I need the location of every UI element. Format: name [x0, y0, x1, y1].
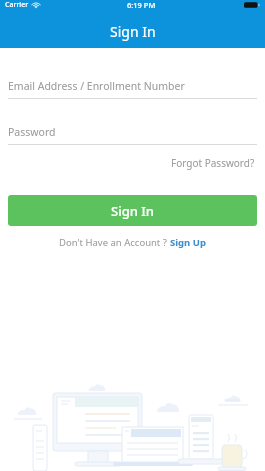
button[interactable]: Sign In: [8, 195, 257, 226]
staticText: Don't Have an Account ?: [59, 236, 170, 249]
staticText: Sign In: [110, 22, 156, 41]
other: Devices illustration: [0, 369, 265, 471]
button[interactable]: Password: [8, 120, 257, 144]
button[interactable]: Sign Up: [170, 234, 206, 251]
staticText: Forgot Password?: [171, 156, 255, 170]
staticText: Password: [8, 125, 56, 139]
button[interactable]: Forgot Password?: [169, 153, 257, 173]
button[interactable]: Email Address / Enrollment Number: [8, 74, 257, 98]
staticText: Email Address / Enrollment Number: [8, 79, 185, 93]
staticText: Carrier: [5, 0, 29, 10]
staticText: Sign In: [111, 202, 155, 220]
staticText: Sign Up: [170, 236, 206, 249]
staticText: 6:19 PM: [127, 0, 156, 10]
